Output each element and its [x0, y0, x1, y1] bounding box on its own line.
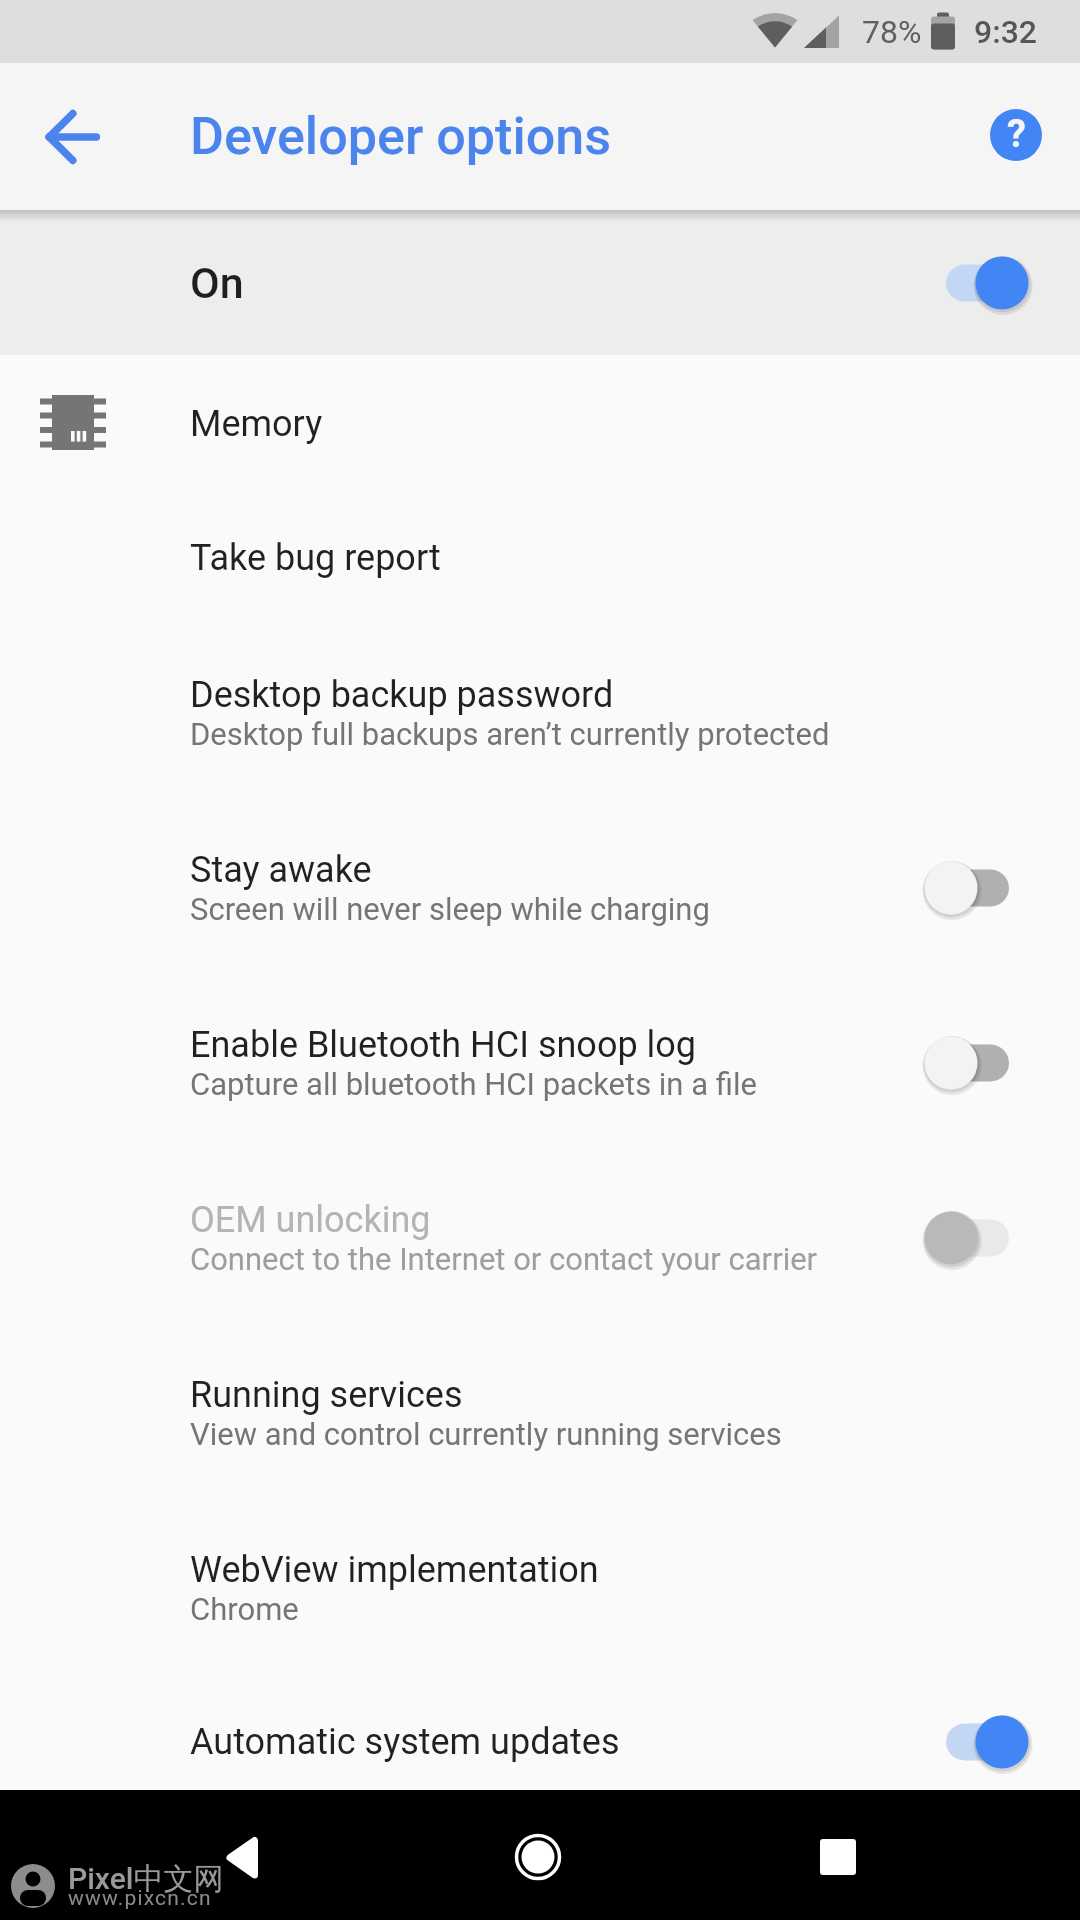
staticText: Memory	[190, 403, 323, 445]
staticText: Pixel中文网	[68, 1860, 224, 1894]
button[interactable]	[181, 1797, 301, 1917]
staticText: Automatic system updates	[190, 1721, 620, 1763]
button[interactable]: On	[0, 210, 1080, 355]
button[interactable]: Running services	[0, 1325, 1080, 1500]
staticText: Enable Bluetooth HCI snoop log	[190, 1024, 697, 1066]
button[interactable]: Desktop backup password	[0, 625, 1080, 800]
staticText: Stay awake	[190, 849, 372, 891]
staticText: WebView implementation	[190, 1549, 599, 1591]
staticText: Desktop backup password	[190, 674, 614, 716]
staticText: Running services	[190, 1374, 463, 1416]
staticText: 9:32	[974, 13, 1038, 51]
staticText: On	[190, 258, 244, 308]
button[interactable]	[920, 1206, 1036, 1270]
button[interactable]	[25, 89, 121, 185]
button[interactable]: ?	[968, 87, 1064, 183]
staticText: Screen will never sleep while charging	[190, 891, 710, 927]
staticText: View and control currently running servi…	[190, 1416, 782, 1452]
staticText: Connect to the Internet or contact your …	[190, 1241, 818, 1277]
button[interactable]	[920, 1710, 1036, 1774]
staticText: OEM unlocking	[190, 1199, 431, 1241]
button[interactable]: Take bug report	[0, 491, 1080, 625]
button[interactable]	[478, 1797, 598, 1917]
button[interactable]	[778, 1797, 898, 1917]
staticText: Chrome	[190, 1591, 299, 1627]
button[interactable]: Stay awake	[0, 800, 1080, 975]
staticText: Desktop full backups aren’t currently pr…	[190, 716, 830, 752]
button[interactable]: Enable Bluetooth HCI snoop log	[0, 975, 1080, 1150]
staticText: Take bug report	[190, 537, 441, 579]
staticText: Capture all bluetooth HCI packets in a f…	[190, 1066, 757, 1102]
button[interactable]: WebView implementation	[0, 1500, 1080, 1675]
button[interactable]: OEM unlocking	[0, 1150, 1080, 1325]
staticText: www.pixcn.cn	[68, 1886, 212, 1910]
button[interactable]	[920, 1031, 1036, 1095]
staticText: Developer options	[190, 106, 612, 167]
staticText: 78%	[862, 13, 922, 51]
staticText: ?	[1007, 112, 1026, 157]
button[interactable]: Memory	[0, 357, 1080, 491]
button[interactable]	[920, 856, 1036, 920]
button[interactable]: Automatic system updates	[0, 1675, 1080, 1809]
button[interactable]	[920, 251, 1036, 315]
